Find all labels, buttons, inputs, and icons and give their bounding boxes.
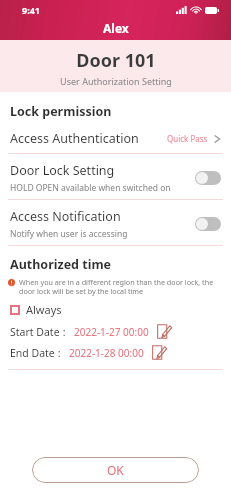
staticText: Access Notification — [10, 208, 121, 225]
button[interactable]: Edit date — [155, 322, 174, 341]
button[interactable]: Toggle — [195, 171, 221, 185]
button[interactable]: Access Notification — [0, 206, 231, 245]
staticText: Door Lock Setting — [10, 162, 115, 179]
staticText: Quick Pass — [167, 133, 208, 144]
staticText: 2022-1-27 00:00 — [74, 325, 149, 339]
button[interactable]: Edit date — [150, 343, 169, 362]
button[interactable]: Always — [0, 300, 72, 319]
staticText: 9:41 — [22, 4, 40, 16]
staticText: 2022-1-28 00:00 — [69, 346, 144, 360]
button[interactable]: Access Authentication — [0, 129, 231, 153]
staticText: Alex — [103, 20, 129, 36]
staticText: : — [55, 346, 61, 360]
staticText: Authorized time — [10, 256, 112, 273]
staticText: HOLD OPEN available when switched on — [10, 182, 171, 194]
button[interactable]: Start Date — [0, 322, 231, 341]
staticText: Notify when user is accessing — [10, 228, 128, 240]
button[interactable]: Toggle — [195, 217, 221, 231]
staticText: : — [60, 325, 66, 339]
staticText: Lock permission — [10, 103, 112, 120]
button[interactable]: OK — [32, 457, 199, 483]
staticText: Always — [26, 302, 62, 317]
staticText: When you are in a different region than … — [19, 277, 221, 296]
staticText: Door 101 — [76, 48, 156, 73]
button[interactable]: Door Lock Setting — [0, 160, 231, 199]
staticText: End Date — [10, 346, 55, 360]
staticText: User Authorization Setting — [60, 75, 172, 87]
button[interactable]: End Date — [0, 343, 231, 362]
staticText: OK — [107, 462, 124, 478]
staticText: Start Date — [10, 325, 60, 339]
staticText: Access Authentication — [10, 130, 139, 147]
